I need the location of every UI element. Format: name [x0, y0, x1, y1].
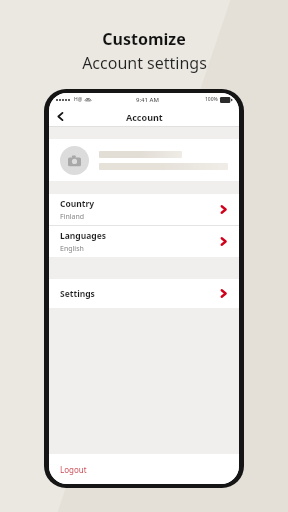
button[interactable]: Settings: [49, 279, 239, 308]
staticText: Account settings: [82, 52, 207, 74]
button[interactable]: [49, 139, 239, 181]
staticText: Customize: [102, 28, 186, 50]
staticText: English: [60, 244, 84, 254]
staticText: H@: [74, 96, 83, 103]
staticText: Finland: [60, 212, 85, 222]
staticText: Logout: [60, 464, 87, 475]
button[interactable]: Logout: [49, 454, 239, 484]
staticText: 9:41 AM: [136, 96, 159, 104]
button[interactable]: Languages: [49, 226, 239, 257]
staticText: Settings: [60, 288, 95, 300]
button[interactable]: Country: [49, 194, 239, 225]
staticText: 100%: [205, 96, 218, 103]
staticText: Account: [126, 111, 163, 123]
staticText: Languages: [60, 230, 107, 242]
button[interactable]: Back: [49, 106, 71, 127]
staticText: Country: [60, 198, 95, 210]
